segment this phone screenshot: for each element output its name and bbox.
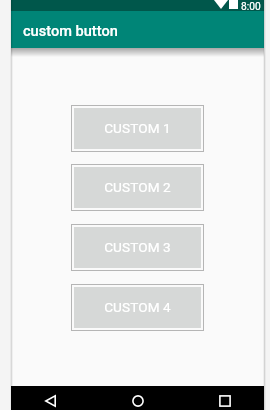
- staticText: CUSTOM 3: [104, 239, 171, 255]
- staticText: custom button: [23, 22, 118, 39]
- staticText: CUSTOM 2: [104, 179, 171, 195]
- button[interactable]: CUSTOM 4: [74, 287, 201, 328]
- button[interactable]: CUSTOM 3: [74, 227, 201, 268]
- button[interactable]: Back: [35, 392, 66, 410]
- button[interactable]: custom button: [11, 11, 264, 48]
- staticText: 8:00: [241, 1, 261, 12]
- button[interactable]: CUSTOM 1: [74, 108, 201, 149]
- staticText: CUSTOM 4: [104, 299, 171, 315]
- button[interactable]: CUSTOM 2: [74, 167, 201, 208]
- button[interactable]: Recents: [209, 392, 240, 410]
- staticText: CUSTOM 1: [104, 120, 171, 136]
- button[interactable]: Home: [122, 392, 153, 410]
